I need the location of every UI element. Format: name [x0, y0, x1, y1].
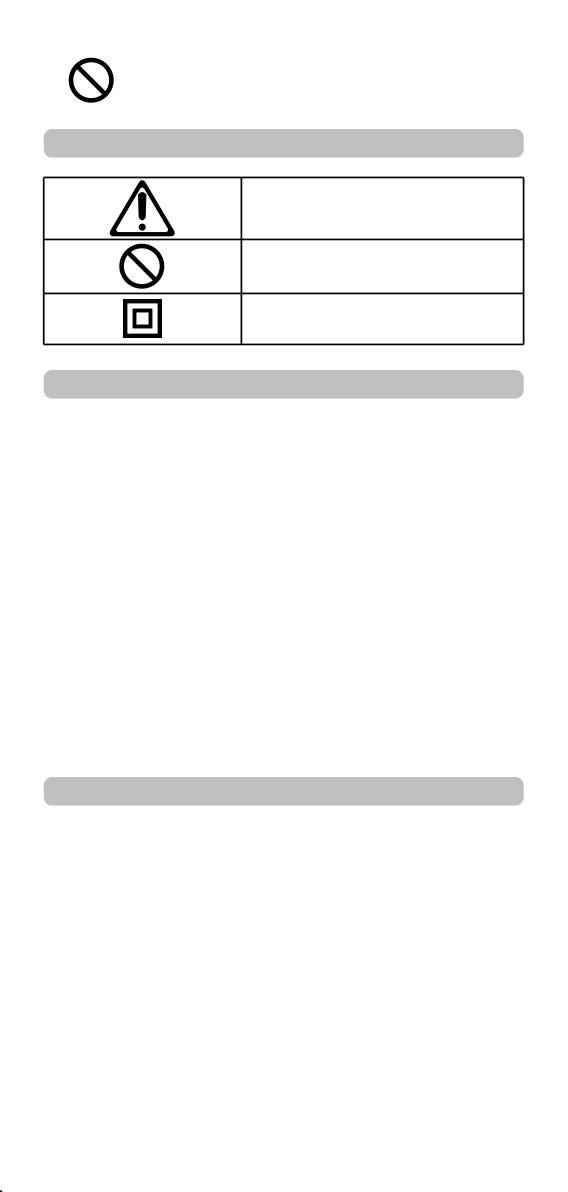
button[interactable]: Prohibited [44, 239, 524, 293]
button[interactable]: Class II equipment [44, 293, 524, 344]
button[interactable]: Warning [44, 177, 524, 239]
